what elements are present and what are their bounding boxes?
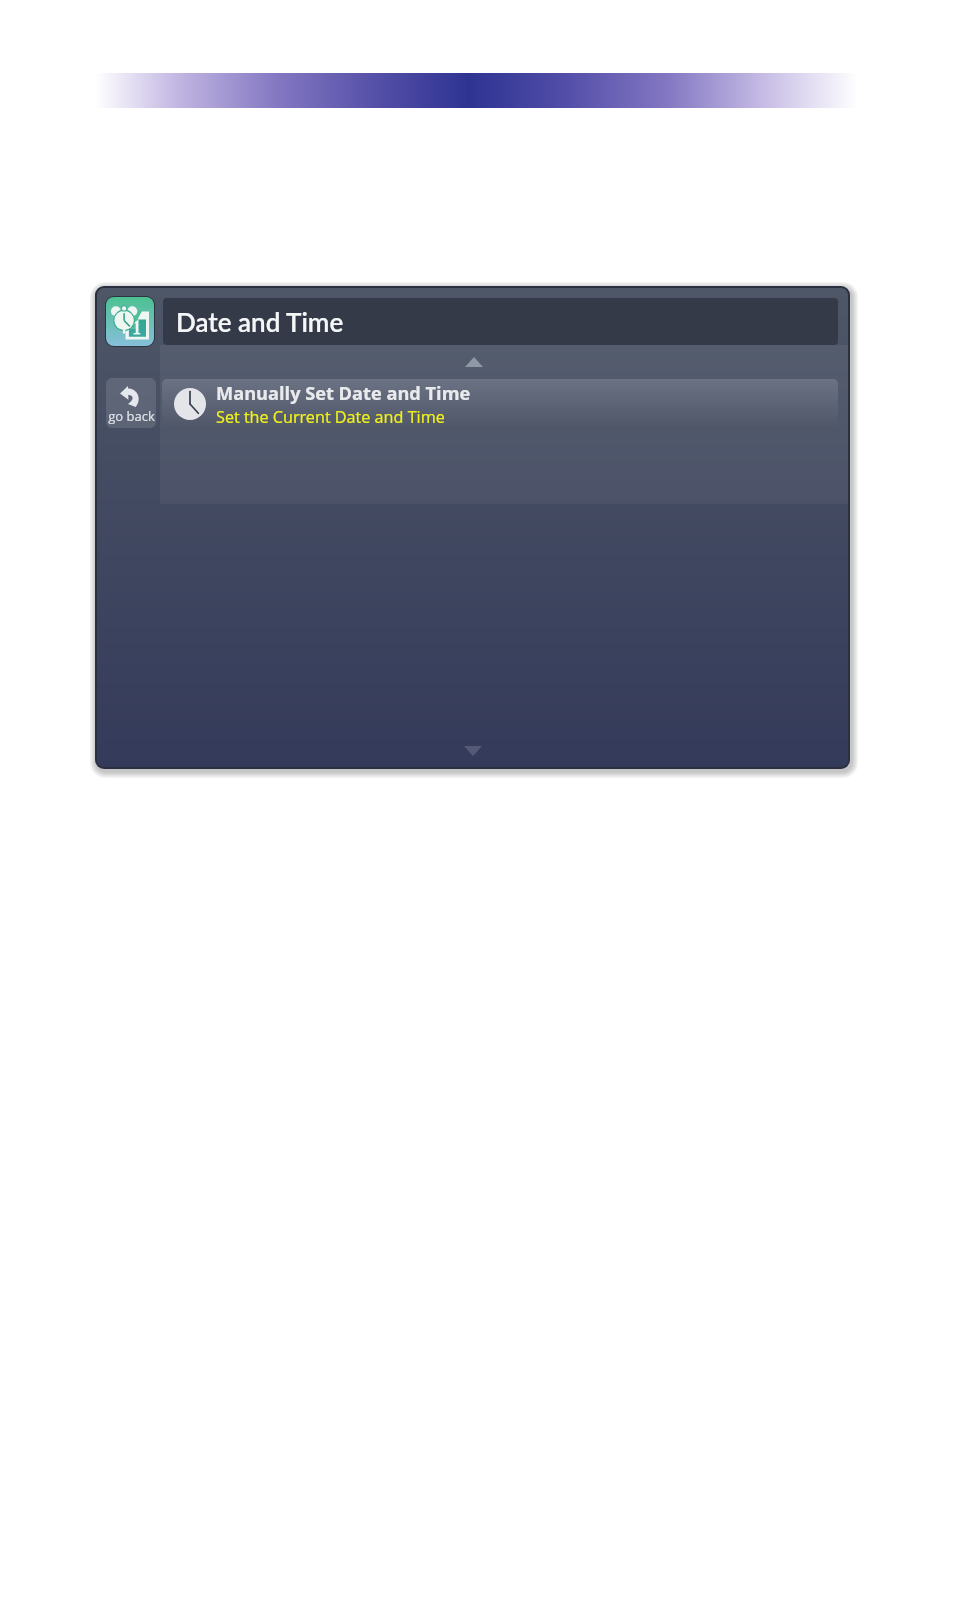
staticText: Set the Current Date and Time <box>216 406 445 428</box>
staticText: Manually Set Date and Time <box>216 381 471 406</box>
staticText: Date and Time <box>176 306 344 337</box>
button[interactable]: Date and Time <box>105 296 155 347</box>
button[interactable]: go back <box>106 378 156 428</box>
button[interactable]: Manually Set Date and Time <box>162 379 838 429</box>
staticText: go back <box>108 407 155 425</box>
button[interactable]: Date and Time <box>163 298 838 345</box>
